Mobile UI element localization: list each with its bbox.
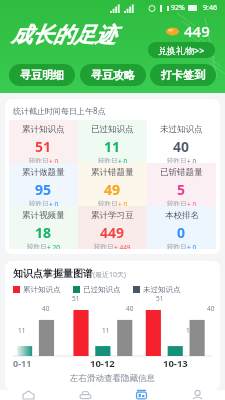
staticText: 打卡签到: [161, 68, 205, 82]
staticText: 0-11: [13, 357, 32, 369]
button[interactable]: 未过知识点: [147, 120, 216, 163]
staticText: 40: [207, 304, 215, 313]
staticText: 较昨日: [94, 243, 114, 249]
staticText: 未过知识点: [160, 124, 203, 135]
staticText: 累计做题量: [22, 167, 65, 178]
button[interactable]: 打卡签到: [150, 64, 216, 86]
staticText: 较昨日: [29, 200, 49, 206]
button[interactable]: 累计学习豆: [78, 206, 147, 249]
staticText: 累计错题量: [91, 167, 134, 178]
staticText: 已过知识点: [83, 285, 121, 294]
staticText: 49: [104, 180, 121, 199]
button[interactable]: 累计错题量: [78, 163, 147, 206]
staticText: + 0: [118, 157, 128, 163]
staticText: 已过知识点: [91, 124, 134, 135]
staticText: 累计知识点: [22, 124, 65, 135]
staticText: + 449: [114, 243, 131, 249]
button[interactable]: 首页: [0, 390, 57, 400]
staticText: 较昨日: [27, 243, 47, 249]
staticText: 449: [184, 21, 210, 41]
staticText: 未过知识点: [143, 285, 181, 294]
staticText: 92%: [171, 3, 185, 13]
button[interactable]: 兑换礼物>>: [148, 42, 215, 58]
staticText: 11: [186, 326, 194, 335]
staticText: 兑换礼物>>: [158, 44, 205, 56]
staticText: 累计学习豆: [91, 210, 134, 221]
staticText: 9:46: [203, 3, 217, 13]
staticText: 449: [100, 223, 125, 242]
staticText: 寻豆明细: [20, 68, 64, 82]
staticText: 寻豆攻略: [91, 68, 135, 82]
staticText: 11: [104, 137, 121, 156]
staticText: 统计截止时间每日上午8点: [13, 105, 106, 116]
staticText: 51: [72, 294, 80, 303]
staticText: 40: [173, 137, 190, 156]
button[interactable]: 累计做题量: [9, 163, 78, 206]
staticText: 5: [177, 180, 186, 199]
staticText: 0: [177, 223, 186, 242]
button[interactable]: 累计视频量: [9, 206, 78, 249]
staticText: 40: [42, 304, 50, 313]
staticText: 18: [35, 223, 52, 242]
button[interactable]: 特色课: [57, 390, 113, 400]
staticText: 成长的足迹: [11, 22, 116, 48]
staticText: (最近10天): [93, 270, 127, 280]
staticText: 51: [156, 294, 164, 303]
staticText: 51: [35, 137, 52, 156]
staticText: + 20: [47, 243, 60, 249]
staticText: + 0: [49, 200, 59, 206]
button[interactable]: 已过知识点: [78, 120, 147, 163]
button[interactable]: 寻豆攻略: [80, 64, 146, 86]
button[interactable]: 寻豆明细: [9, 64, 75, 86]
staticText: 知识点掌握量图谱: [13, 267, 93, 280]
staticText: 本校排名: [165, 210, 199, 221]
button[interactable]: 已斩错题量: [147, 163, 216, 206]
button[interactable]: 累计知识点: [9, 120, 78, 163]
staticText: + 0: [118, 200, 128, 206]
staticText: 较昨日: [98, 200, 118, 206]
staticText: 95: [35, 180, 52, 199]
staticText: 较昨日: [167, 243, 187, 249]
button[interactable]: 成长: [113, 390, 169, 400]
staticText: 10-13: [163, 357, 188, 370]
button[interactable]: 我的: [169, 390, 225, 400]
button[interactable]: 本校排名: [147, 206, 216, 249]
staticText: + 0: [49, 157, 59, 163]
staticText: 已斩错题量: [160, 167, 203, 178]
staticText: 40: [126, 304, 134, 313]
staticText: 11: [102, 326, 110, 335]
staticText: 11: [18, 326, 26, 335]
staticText: + 0: [187, 243, 197, 249]
staticText: 累计知识点: [23, 285, 61, 294]
staticText: 较昨日: [167, 157, 187, 163]
staticText: 左右滑动查看隐藏信息: [13, 373, 212, 384]
staticText: 较昨日: [29, 157, 49, 163]
staticText: 较昨日: [167, 200, 187, 206]
staticText: 累计视频量: [22, 210, 65, 221]
staticText: + 0: [187, 157, 197, 163]
staticText: 较昨日: [98, 157, 118, 163]
staticText: + 0: [187, 200, 197, 206]
staticText: 10-12: [90, 357, 115, 370]
